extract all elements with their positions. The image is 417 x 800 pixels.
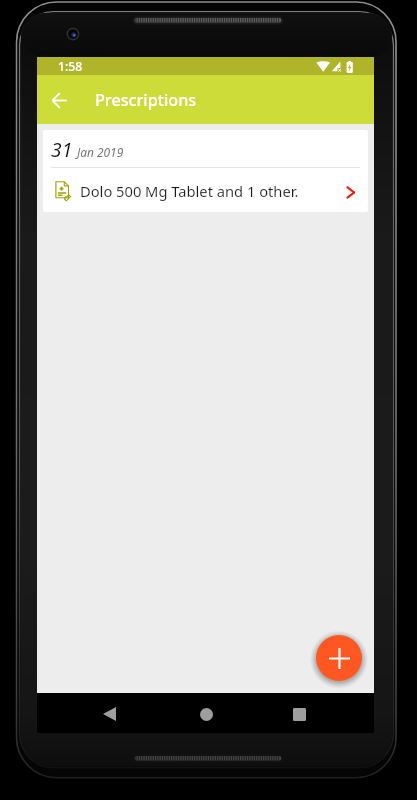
staticText: 1:58 xyxy=(58,58,83,75)
button[interactable]: Back xyxy=(86,694,132,734)
button[interactable]: Home xyxy=(183,694,229,734)
staticText: 31 xyxy=(51,136,73,162)
staticText: Dolo 500 Mg Tablet and 1 other. xyxy=(80,181,299,201)
button[interactable]: Add prescription xyxy=(316,635,362,681)
button[interactable]: Dolo 500 Mg Tablet and 1 other. xyxy=(43,168,368,212)
button[interactable]: Recents xyxy=(276,694,322,734)
button[interactable]: Back xyxy=(37,78,81,122)
staticText: Prescriptions xyxy=(95,89,197,111)
staticText: Jan 2019 xyxy=(77,144,124,160)
